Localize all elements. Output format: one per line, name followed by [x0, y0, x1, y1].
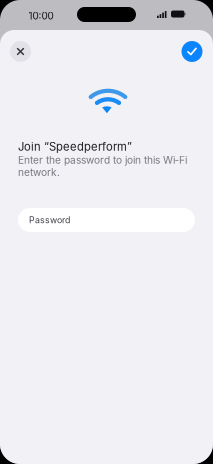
button[interactable]: Password [18, 208, 195, 232]
staticText: Enter the password to join this Wi‑Fi ne… [18, 154, 187, 178]
staticText: Join “Speedperform” [18, 140, 132, 154]
button[interactable]: Join network [181, 41, 202, 62]
staticText: Password [29, 215, 70, 225]
staticText: 10:00 [28, 10, 53, 22]
button[interactable]: Close [10, 41, 31, 62]
